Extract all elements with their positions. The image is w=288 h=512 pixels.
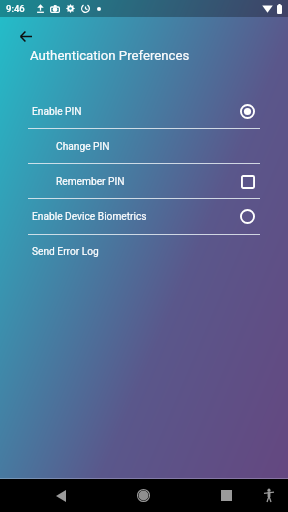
staticText: 9:46 bbox=[6, 3, 25, 14]
button[interactable]: Remember PIN bbox=[0, 164, 288, 199]
button[interactable]: Change PIN bbox=[0, 129, 288, 164]
staticText: Remember PIN bbox=[56, 176, 125, 188]
button[interactable]: Send Error Log bbox=[0, 234, 288, 269]
staticText: Change PIN bbox=[56, 141, 110, 153]
button[interactable]: Accessibility bbox=[252, 479, 285, 512]
button[interactable]: Recent apps bbox=[210, 479, 243, 512]
staticText: Send Error Log bbox=[32, 246, 99, 258]
button[interactable]: Enable Device Biometrics bbox=[0, 199, 288, 234]
staticText: Enable Device Biometrics bbox=[32, 211, 147, 223]
staticText: Enable PIN bbox=[32, 106, 82, 118]
staticText: Authentication Preferences bbox=[30, 48, 190, 63]
button[interactable]: Back bbox=[11, 22, 40, 51]
button[interactable]: Enable PIN bbox=[0, 94, 288, 129]
button[interactable]: Back bbox=[44, 479, 77, 512]
button[interactable]: Home bbox=[127, 479, 160, 512]
